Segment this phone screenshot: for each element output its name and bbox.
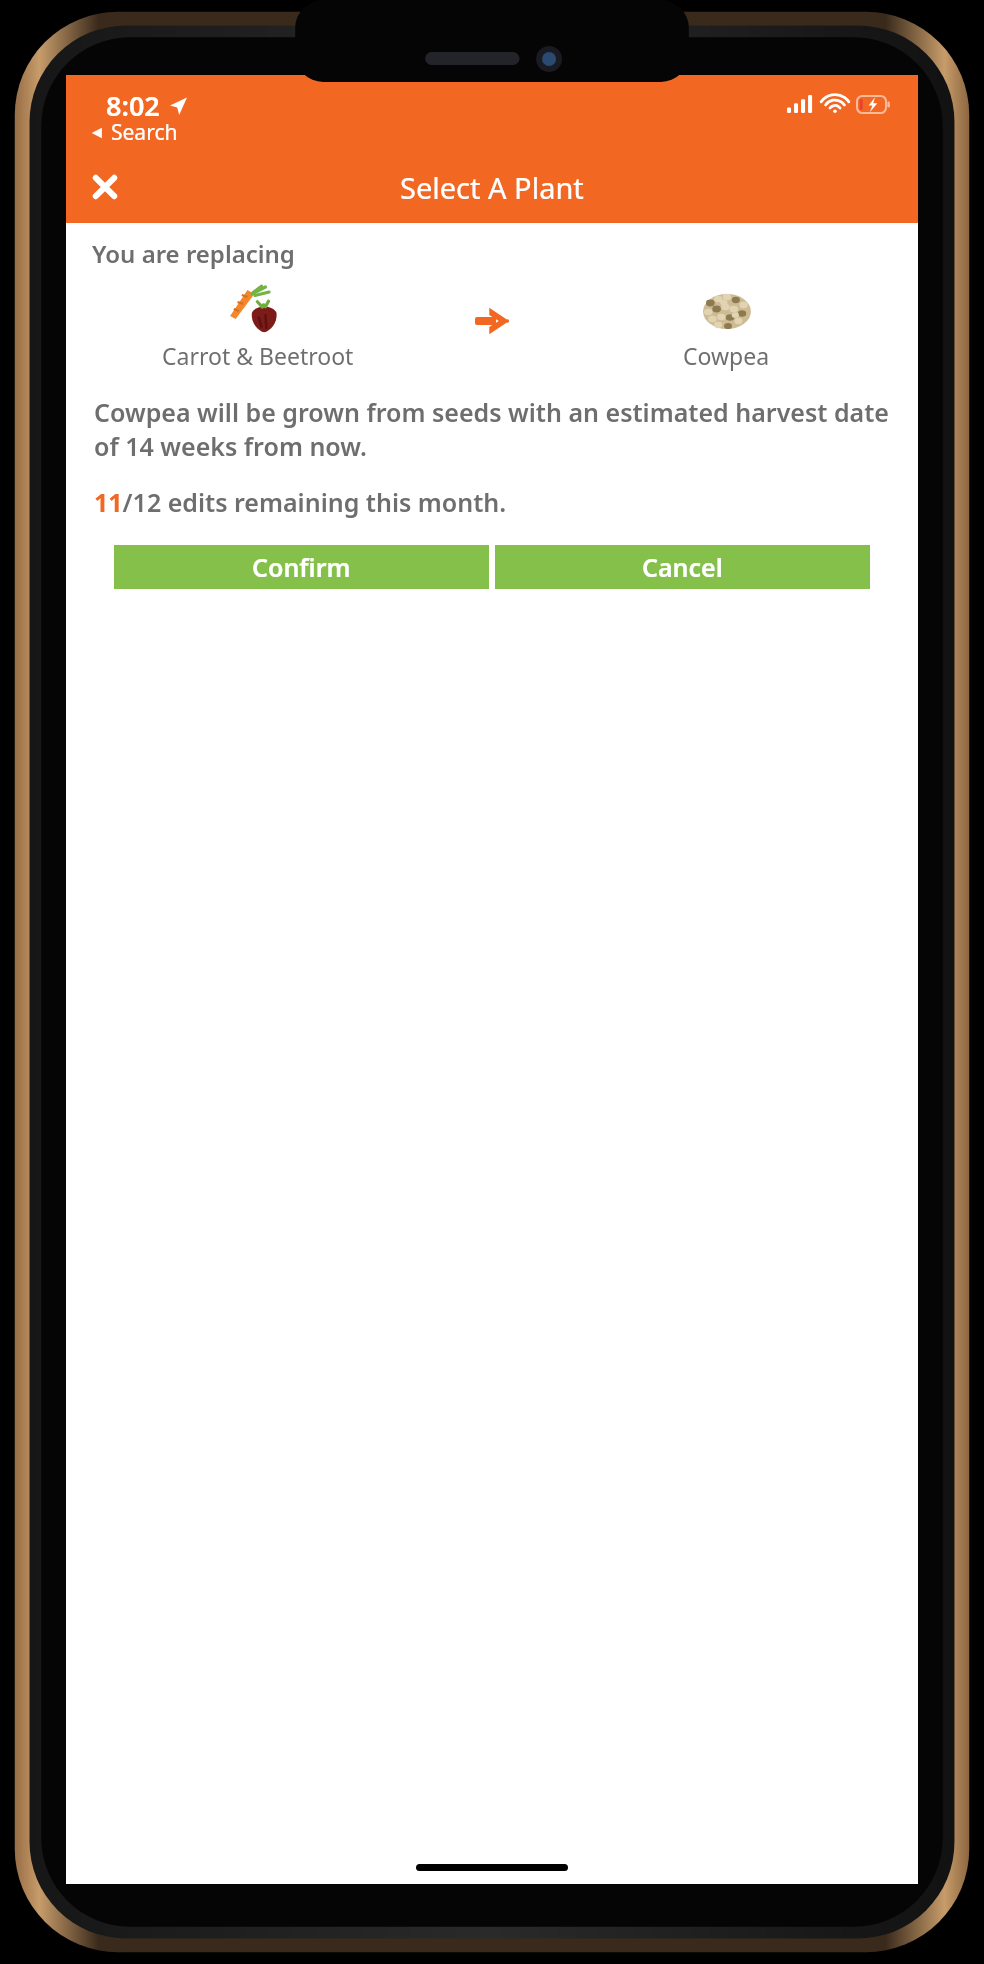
staticText: Search xyxy=(111,118,178,147)
button[interactable]: Cancel xyxy=(495,545,870,589)
staticText: Cowpea xyxy=(683,340,770,371)
staticText: 8:02 xyxy=(106,87,160,124)
staticText: Cowpea will be grown from seeds with an … xyxy=(94,395,890,463)
button[interactable]: Confirm xyxy=(114,545,489,589)
button[interactable]: Close xyxy=(78,160,132,214)
button[interactable]: Search xyxy=(90,118,178,147)
staticText: Cancel xyxy=(642,550,723,584)
staticText: You are replacing xyxy=(92,237,295,270)
staticText: Confirm xyxy=(252,550,351,584)
staticText: Carrot & Beetroot xyxy=(162,340,354,371)
staticText: 11/12 edits remaining this month. xyxy=(94,485,507,519)
staticText: Select A Plant xyxy=(400,168,584,207)
